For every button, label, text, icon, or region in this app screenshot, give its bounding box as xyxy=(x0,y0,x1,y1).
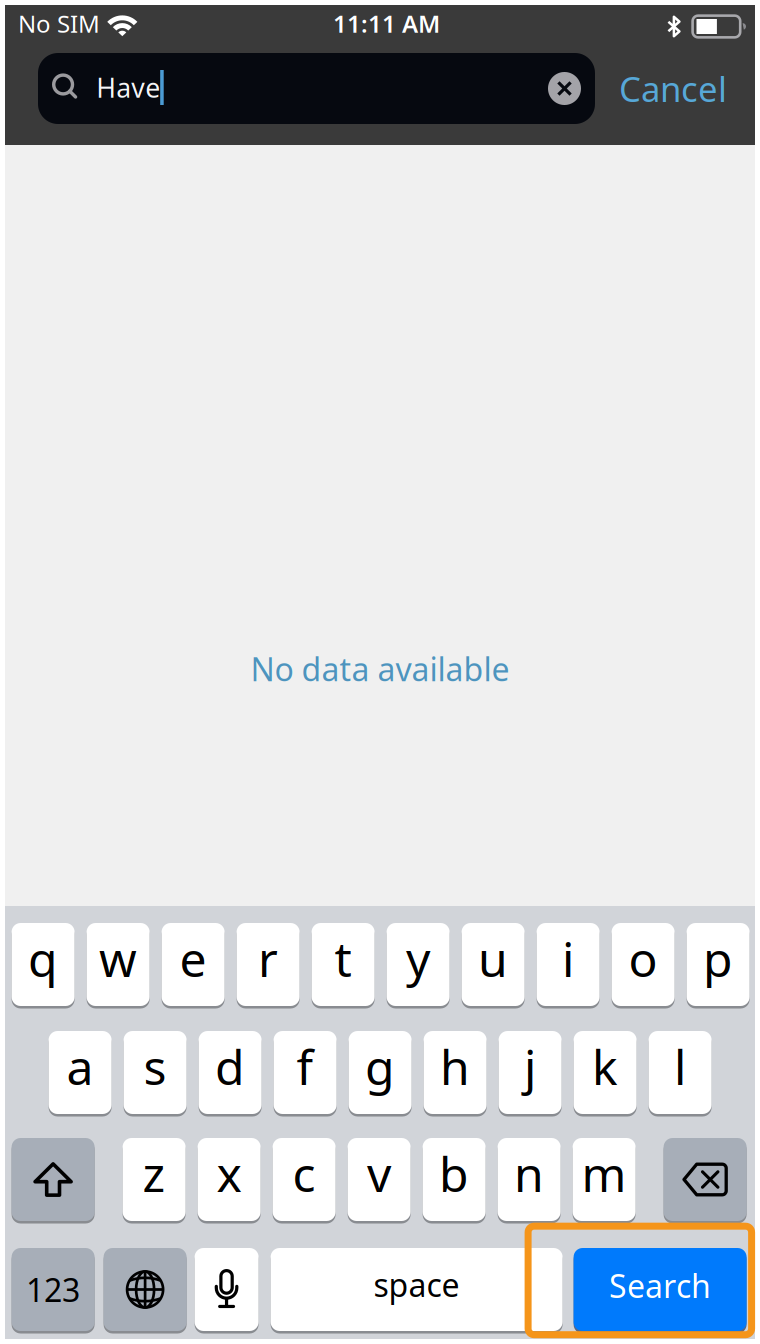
button[interactable]: Delete xyxy=(664,1138,747,1221)
button[interactable]: f xyxy=(274,1031,337,1114)
button[interactable]: u xyxy=(462,923,525,1006)
staticText: g xyxy=(365,1035,395,1098)
staticText: 123 xyxy=(26,1268,80,1311)
button[interactable]: d xyxy=(199,1031,262,1114)
button[interactable]: b xyxy=(423,1138,486,1221)
staticText: y xyxy=(406,927,430,990)
staticText: Have xyxy=(96,70,160,105)
button[interactable]: Next keyboard xyxy=(104,1248,187,1331)
staticText: w xyxy=(99,927,137,990)
staticText: z xyxy=(143,1142,166,1205)
staticText: o xyxy=(629,927,658,990)
button[interactable]: e xyxy=(162,923,225,1006)
staticText: Cancel xyxy=(619,65,727,111)
button[interactable]: m xyxy=(573,1138,636,1221)
button[interactable]: j xyxy=(499,1031,562,1114)
staticText: x xyxy=(217,1142,242,1205)
staticText: t xyxy=(335,927,352,990)
staticText: space xyxy=(374,1263,460,1306)
button[interactable]: space xyxy=(271,1248,563,1331)
button[interactable]: Search xyxy=(574,1248,747,1331)
button[interactable]: a xyxy=(49,1031,112,1114)
button[interactable]: z xyxy=(123,1138,186,1221)
staticText: a xyxy=(67,1035,94,1098)
staticText: b xyxy=(439,1142,469,1205)
button[interactable]: i xyxy=(537,923,600,1006)
button[interactable]: x xyxy=(198,1138,261,1221)
button[interactable]: Shift xyxy=(12,1138,95,1221)
button[interactable]: k xyxy=(574,1031,637,1114)
staticText: n xyxy=(514,1142,544,1205)
staticText: p xyxy=(703,927,733,990)
staticText: No data available xyxy=(250,647,509,690)
button[interactable]: q xyxy=(12,923,75,1006)
button[interactable]: g xyxy=(349,1031,412,1114)
button[interactable]: y xyxy=(387,923,450,1006)
staticText: j xyxy=(524,1035,536,1098)
button[interactable]: t xyxy=(312,923,375,1006)
button[interactable]: o xyxy=(612,923,675,1006)
staticText: h xyxy=(440,1035,470,1098)
staticText: s xyxy=(144,1035,167,1098)
staticText: e xyxy=(180,927,207,990)
button[interactable]: v xyxy=(348,1138,411,1221)
button[interactable]: Numbers xyxy=(12,1248,95,1331)
button[interactable]: w xyxy=(87,923,150,1006)
staticText: No SIM xyxy=(18,8,100,39)
staticText: i xyxy=(562,927,574,990)
staticText: 11:11 AM xyxy=(333,8,440,39)
button[interactable]: r xyxy=(237,923,300,1006)
button[interactable]: c xyxy=(273,1138,336,1221)
button[interactable]: Dictate xyxy=(195,1248,259,1331)
button[interactable]: p xyxy=(687,923,750,1006)
button[interactable]: s xyxy=(124,1031,187,1114)
staticText: d xyxy=(215,1035,245,1098)
staticText: u xyxy=(478,927,508,990)
staticText: c xyxy=(293,1142,316,1205)
button[interactable]: Cancel xyxy=(618,56,728,120)
staticText: k xyxy=(592,1035,618,1098)
staticText: l xyxy=(674,1035,686,1098)
staticText: r xyxy=(258,927,278,990)
button[interactable]: l xyxy=(649,1031,712,1114)
staticText: f xyxy=(297,1035,314,1098)
button[interactable]: h xyxy=(424,1031,487,1114)
staticText: q xyxy=(28,927,58,990)
staticText: Search xyxy=(609,1264,711,1307)
button[interactable]: n xyxy=(498,1138,561,1221)
staticText: v xyxy=(367,1142,391,1205)
button[interactable]: Clear text xyxy=(548,72,581,105)
staticText: m xyxy=(582,1142,627,1205)
